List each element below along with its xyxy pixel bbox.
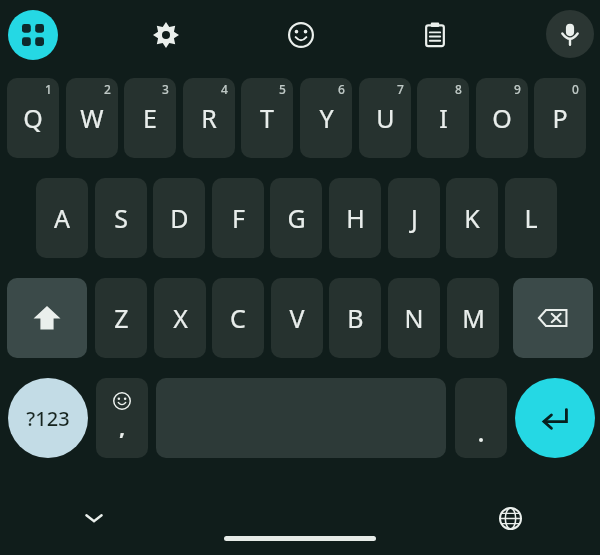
- staticText: W: [80, 101, 104, 135]
- button[interactable]: I: [417, 78, 469, 158]
- staticText: D: [170, 201, 189, 235]
- staticText: U: [376, 101, 395, 135]
- staticText: S: [114, 201, 128, 235]
- button[interactable]: X: [154, 278, 206, 358]
- staticText: X: [173, 301, 188, 335]
- button[interactable]: H: [329, 178, 381, 258]
- button[interactable]: A: [36, 178, 88, 258]
- button[interactable]: M: [447, 278, 499, 358]
- staticText: Z: [114, 301, 129, 335]
- button[interactable]: B: [329, 278, 381, 358]
- staticText: 4: [221, 81, 228, 97]
- button[interactable]: Enter: [515, 378, 595, 458]
- staticText: Y: [319, 101, 334, 135]
- button[interactable]: Apps: [8, 10, 58, 60]
- staticText: H: [346, 201, 365, 235]
- button[interactable]: Z: [95, 278, 147, 358]
- button[interactable]: E: [124, 78, 176, 158]
- button[interactable]: Hide keyboard: [74, 498, 114, 538]
- staticText: O: [492, 101, 512, 135]
- staticText: G: [287, 201, 306, 235]
- button[interactable]: Shift: [7, 278, 87, 358]
- button[interactable]: S: [95, 178, 147, 258]
- staticText: I: [439, 101, 448, 135]
- staticText: 0: [572, 81, 579, 97]
- staticText: A: [54, 201, 70, 235]
- button[interactable]: Change language: [490, 498, 530, 538]
- staticText: 8: [455, 81, 462, 97]
- button[interactable]: ?123: [8, 378, 88, 458]
- button[interactable]: L: [505, 178, 557, 258]
- staticText: ?123: [26, 405, 70, 432]
- button[interactable]: Backspace: [513, 278, 593, 358]
- button[interactable]: K: [446, 178, 498, 258]
- button[interactable]: N: [388, 278, 440, 358]
- button[interactable]: Settings: [143, 12, 189, 58]
- staticText: Q: [23, 101, 43, 135]
- button[interactable]: J: [388, 178, 440, 258]
- button[interactable]: T: [241, 78, 293, 158]
- staticText: F: [232, 201, 245, 235]
- staticText: P: [552, 101, 568, 135]
- button[interactable]: U: [359, 78, 411, 158]
- button[interactable]: V: [271, 278, 323, 358]
- staticText: T: [260, 101, 274, 135]
- button[interactable]: F: [212, 178, 264, 258]
- staticText: 2: [104, 81, 111, 97]
- staticText: 7: [397, 81, 404, 97]
- button[interactable]: G: [270, 178, 322, 258]
- staticText: 1: [45, 81, 52, 97]
- staticText: R: [201, 101, 217, 135]
- staticText: E: [143, 101, 157, 135]
- button[interactable]: W: [66, 78, 118, 158]
- staticText: B: [347, 301, 364, 335]
- button[interactable]: Y: [300, 78, 352, 158]
- button[interactable]: R: [183, 78, 235, 158]
- button[interactable]: Voice input: [546, 10, 594, 58]
- staticText: 9: [514, 81, 521, 97]
- button[interactable]: Emoji and comma: [96, 378, 148, 458]
- staticText: V: [289, 301, 305, 335]
- button[interactable]: Period: [455, 378, 507, 458]
- staticText: N: [404, 301, 424, 335]
- staticText: 6: [338, 81, 345, 97]
- button[interactable]: Q: [7, 78, 59, 158]
- staticText: J: [411, 201, 418, 235]
- button[interactable]: O: [476, 78, 528, 158]
- button[interactable]: P: [534, 78, 586, 158]
- button[interactable]: Emoji: [278, 12, 324, 58]
- staticText: C: [230, 301, 246, 335]
- staticText: K: [464, 201, 480, 235]
- staticText: M: [462, 301, 485, 335]
- button[interactable]: D: [153, 178, 205, 258]
- staticText: L: [524, 201, 538, 235]
- staticText: ,: [119, 414, 125, 441]
- staticText: 3: [162, 81, 169, 97]
- staticText: 5: [279, 81, 286, 97]
- button[interactable]: C: [212, 278, 264, 358]
- button[interactable]: Clipboard: [412, 12, 458, 58]
